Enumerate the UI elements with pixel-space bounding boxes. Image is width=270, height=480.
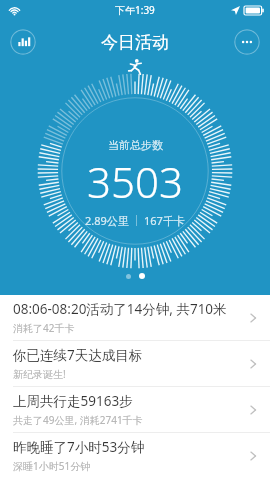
staticText: 你已连续7天达成目标: [13, 346, 143, 364]
button[interactable]: 你已连续7天达成目标: [0, 341, 270, 387]
staticText: 消耗了42千卡: [13, 321, 75, 335]
staticText: 2.89公里: [85, 213, 129, 228]
staticText: 3503: [87, 153, 183, 210]
staticText: 下午1:39: [115, 3, 155, 17]
button[interactable]: 上周共行走59163步: [0, 387, 270, 433]
staticText: 167千卡: [144, 213, 185, 228]
staticText: 当前总步数: [108, 138, 163, 152]
staticText: 今日活动: [101, 32, 169, 53]
staticText: 共走了49公里, 消耗2741千卡: [13, 413, 143, 427]
staticText: 08:06-08:20活动了14分钟, 共710米: [13, 300, 227, 318]
button[interactable]: More options: [234, 29, 260, 55]
button[interactable]: Statistics: [10, 29, 36, 55]
button[interactable]: 昨晚睡了7小时53分钟: [0, 433, 270, 478]
staticText: 上周共行走59163步: [13, 392, 133, 410]
staticText: 新纪录诞生!: [13, 367, 66, 381]
staticText: 昨晚睡了7小时53分钟: [13, 438, 145, 456]
staticText: 深睡1小时51分钟: [13, 459, 91, 473]
button[interactable]: 08:06-08:20活动了14分钟, 共710米: [0, 295, 270, 341]
